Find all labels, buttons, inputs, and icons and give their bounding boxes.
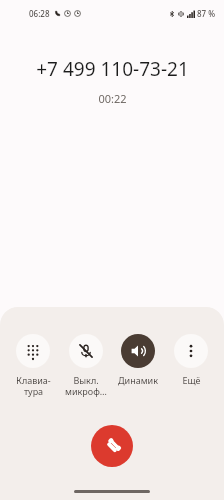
- button[interactable]: More: [166, 334, 216, 386]
- button[interactable]: End call: [91, 425, 133, 467]
- staticText: Ещё: [182, 374, 201, 386]
- button[interactable]: Mute: [61, 334, 111, 398]
- staticText: Выкл. микроф…: [65, 374, 107, 398]
- staticText: Клавиа- тура: [16, 374, 51, 398]
- button[interactable]: Speaker: [113, 334, 163, 386]
- staticText: 87 %: [197, 8, 216, 19]
- staticText: +7 499 110-73-21: [36, 56, 189, 82]
- staticText: Динамик: [118, 374, 158, 386]
- staticText: 00:22: [98, 91, 127, 106]
- staticText: 06:28: [29, 8, 50, 19]
- button[interactable]: Keypad: [8, 334, 58, 398]
